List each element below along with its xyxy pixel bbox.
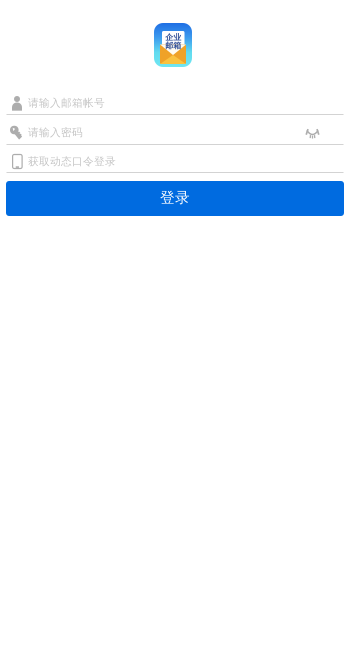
staticText: 获取动态口令登录: [28, 155, 116, 168]
button[interactable]: 登录: [6, 181, 344, 216]
button[interactable]: 请输入邮箱帐号: [0, 92, 350, 115]
button[interactable]: Show password: [305, 124, 318, 140]
staticText: 登录: [160, 188, 190, 206]
staticText: 企业: [165, 32, 181, 42]
staticText: 请输入邮箱帐号: [28, 96, 105, 109]
staticText: 请输入密码: [28, 126, 83, 139]
button[interactable]: 获取动态口令登录: [0, 145, 350, 173]
staticText: 邮箱: [165, 41, 181, 51]
